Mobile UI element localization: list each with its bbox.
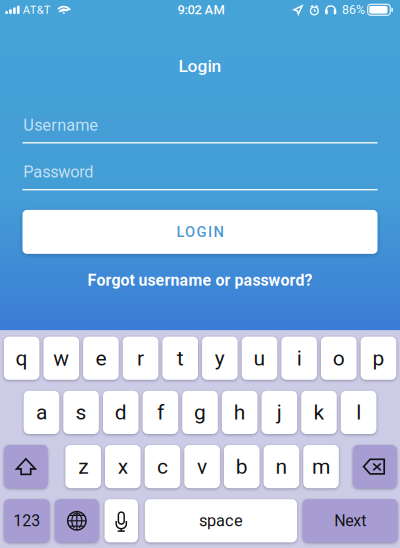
staticText: Next — [334, 511, 366, 530]
staticText: AT&T — [23, 3, 51, 16]
staticText: h — [234, 400, 246, 425]
button[interactable]: LOGIN — [22, 210, 377, 254]
button[interactable]: 123 — [4, 499, 50, 542]
button[interactable]: v — [184, 445, 220, 488]
staticText: t — [177, 346, 184, 370]
button[interactable]: j — [261, 391, 297, 434]
staticText: g — [194, 400, 206, 425]
button[interactable]: c — [145, 445, 180, 488]
button[interactable]: b — [224, 445, 259, 488]
staticText: 86% — [342, 3, 365, 17]
staticText: e — [95, 346, 106, 370]
staticText: k — [313, 400, 324, 425]
button[interactable]: i — [281, 337, 317, 380]
staticText: w — [53, 346, 69, 370]
button[interactable]: u — [242, 337, 277, 380]
button[interactable]: n — [264, 445, 299, 488]
button[interactable]: t — [162, 337, 198, 380]
staticText: c — [157, 454, 168, 479]
staticText: Password — [23, 162, 93, 181]
button[interactable]: Dictate — [104, 499, 138, 542]
staticText: v — [197, 454, 207, 479]
button[interactable]: g — [182, 391, 218, 434]
button[interactable]: e — [83, 337, 119, 380]
staticText: u — [253, 346, 265, 370]
button[interactable]: k — [301, 391, 337, 434]
staticText: 9:02 AM — [177, 2, 224, 17]
staticText: m — [312, 454, 330, 479]
button[interactable]: r — [123, 337, 158, 380]
button[interactable]: z — [65, 445, 101, 488]
staticText: n — [275, 454, 287, 479]
button[interactable]: Delete — [353, 445, 397, 488]
button[interactable]: h — [222, 391, 257, 434]
button[interactable]: w — [43, 337, 79, 380]
staticText: y — [215, 346, 225, 370]
staticText: r — [137, 346, 144, 370]
button[interactable]: p — [361, 337, 396, 380]
staticText: Username — [23, 115, 98, 135]
staticText: o — [333, 346, 345, 370]
staticText: b — [236, 454, 248, 479]
staticText: z — [78, 454, 88, 479]
staticText: q — [16, 346, 28, 370]
staticText: Forgot username or password? — [87, 271, 312, 289]
button[interactable]: Forgot username or password? — [87, 271, 312, 289]
button[interactable]: x — [105, 445, 141, 488]
button[interactable]: s — [63, 391, 99, 434]
button[interactable]: y — [202, 337, 238, 380]
staticText: j — [277, 400, 282, 425]
staticText: LOGIN — [176, 223, 223, 240]
button[interactable]: a — [24, 391, 59, 434]
button[interactable]: q — [4, 337, 39, 380]
button[interactable]: l — [341, 391, 376, 434]
staticText: i — [297, 346, 302, 370]
staticText: l — [356, 400, 361, 425]
staticText: f — [157, 400, 164, 425]
staticText: 123 — [13, 511, 40, 530]
button[interactable]: m — [303, 445, 339, 488]
staticText: Login — [178, 56, 221, 76]
button[interactable]: Next keyboard — [55, 499, 99, 542]
button[interactable]: f — [143, 391, 178, 434]
staticText: a — [36, 400, 47, 425]
staticText: x — [118, 454, 128, 479]
button[interactable]: Shift — [4, 445, 48, 488]
staticText: p — [372, 346, 384, 370]
button[interactable]: Next — [302, 499, 398, 542]
button[interactable]: o — [321, 337, 357, 380]
button[interactable]: d — [103, 391, 138, 434]
staticText: space — [199, 511, 243, 530]
button[interactable]: space — [145, 499, 297, 542]
staticText: d — [115, 400, 127, 425]
staticText: s — [76, 400, 87, 425]
